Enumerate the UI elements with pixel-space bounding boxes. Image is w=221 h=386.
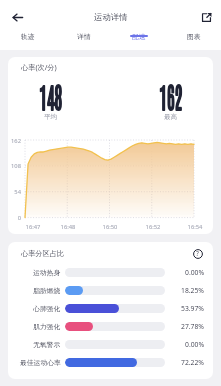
staticText: 162 bbox=[8, 137, 21, 145]
staticText: 27.78% bbox=[181, 322, 205, 331]
staticText: 最高 bbox=[164, 113, 178, 121]
button[interactable]: 最佳运动心率 bbox=[8, 353, 213, 371]
staticText: 0.00% bbox=[185, 340, 205, 349]
staticText: 肌力强化 bbox=[33, 322, 61, 331]
button[interactable]: Share bbox=[195, 6, 217, 28]
button[interactable]: 轨迹 bbox=[0, 31, 56, 40]
button[interactable]: 配速 bbox=[111, 31, 166, 40]
staticText: 54 bbox=[8, 188, 21, 196]
staticText: 无氧警示 bbox=[33, 340, 61, 349]
button[interactable]: 心肺强化 bbox=[8, 299, 213, 317]
staticText: 运动详情 bbox=[94, 12, 128, 23]
button[interactable]: 肌力强化 bbox=[8, 317, 213, 335]
button[interactable]: 运动热身 bbox=[8, 263, 213, 281]
staticText: 心率(次/分) bbox=[21, 62, 57, 72]
staticText: 脂肪燃烧 bbox=[33, 286, 61, 295]
staticText: 16:50 bbox=[98, 223, 122, 231]
staticText: 0 bbox=[8, 214, 21, 222]
staticText: 72.22% bbox=[181, 358, 205, 367]
button[interactable]: 脂肪燃烧 bbox=[8, 281, 213, 299]
staticText: ? bbox=[196, 249, 199, 258]
button[interactable]: Help bbox=[191, 247, 204, 260]
staticText: 53.97% bbox=[181, 304, 205, 313]
staticText: 162 bbox=[159, 78, 183, 114]
staticText: 配速 bbox=[132, 32, 146, 41]
staticText: 心肺强化 bbox=[33, 304, 61, 313]
button[interactable]: Back bbox=[6, 6, 28, 28]
staticText: 16:52 bbox=[141, 223, 165, 231]
staticText: 16:54 bbox=[183, 223, 207, 231]
button[interactable]: 无氧警示 bbox=[8, 335, 213, 353]
staticText: 轨迹 bbox=[21, 32, 35, 41]
staticText: 148 bbox=[39, 78, 63, 114]
staticText: 最佳运动心率 bbox=[20, 358, 61, 367]
staticText: 16:48 bbox=[56, 223, 80, 231]
staticText: 详情 bbox=[77, 32, 91, 41]
staticText: 148 bbox=[39, 78, 63, 114]
staticText: 运动热身 bbox=[33, 268, 61, 277]
button[interactable]: 图表 bbox=[166, 31, 221, 40]
staticText: 心率分区占比 bbox=[21, 249, 65, 258]
staticText: 图表 bbox=[187, 32, 201, 41]
staticText: 18.25% bbox=[181, 286, 205, 295]
staticText: 平均 bbox=[44, 113, 58, 121]
staticText: 162 bbox=[159, 78, 183, 114]
staticText: 108 bbox=[8, 162, 21, 170]
staticText: 16:47 bbox=[21, 223, 45, 231]
staticText: 0.00% bbox=[185, 268, 205, 277]
button[interactable]: 详情 bbox=[56, 31, 111, 40]
